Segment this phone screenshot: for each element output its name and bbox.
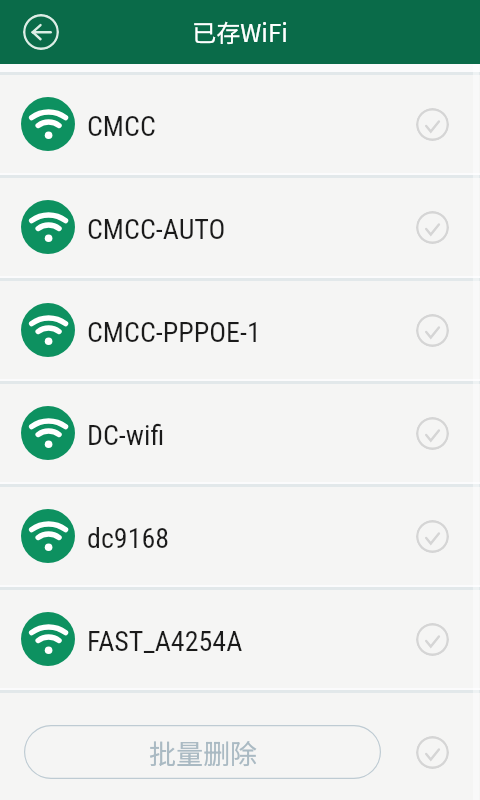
button[interactable]: DC-wifi	[0, 384, 480, 482]
staticText: CMCC-PPPOE-1	[87, 316, 261, 349]
staticText: CMCC	[87, 110, 156, 143]
staticText: dc9168	[87, 522, 170, 555]
button[interactable]: Select	[416, 211, 449, 244]
button[interactable]: Select	[416, 520, 449, 553]
button[interactable]: 批量删除	[24, 725, 381, 779]
staticText: CMCC-AUTO	[87, 213, 226, 246]
staticText: 已存WiFi	[192, 14, 288, 49]
button[interactable]: Select	[416, 623, 449, 656]
button[interactable]: Back	[23, 14, 59, 50]
button[interactable]: Select	[416, 417, 449, 450]
button[interactable]: dc9168	[0, 487, 480, 585]
staticText: FAST_A4254A	[87, 625, 243, 658]
button[interactable]: CMCC	[0, 75, 480, 173]
button[interactable]: Select all	[416, 736, 449, 769]
staticText: DC-wifi	[87, 419, 165, 452]
staticText: 批量删除	[149, 733, 257, 772]
button[interactable]: CMCC-AUTO	[0, 178, 480, 276]
button[interactable]: Select	[416, 108, 449, 141]
button[interactable]: CMCC-PPPOE-1	[0, 281, 480, 379]
button[interactable]: Select	[416, 314, 449, 347]
button[interactable]: FAST_A4254A	[0, 590, 480, 688]
